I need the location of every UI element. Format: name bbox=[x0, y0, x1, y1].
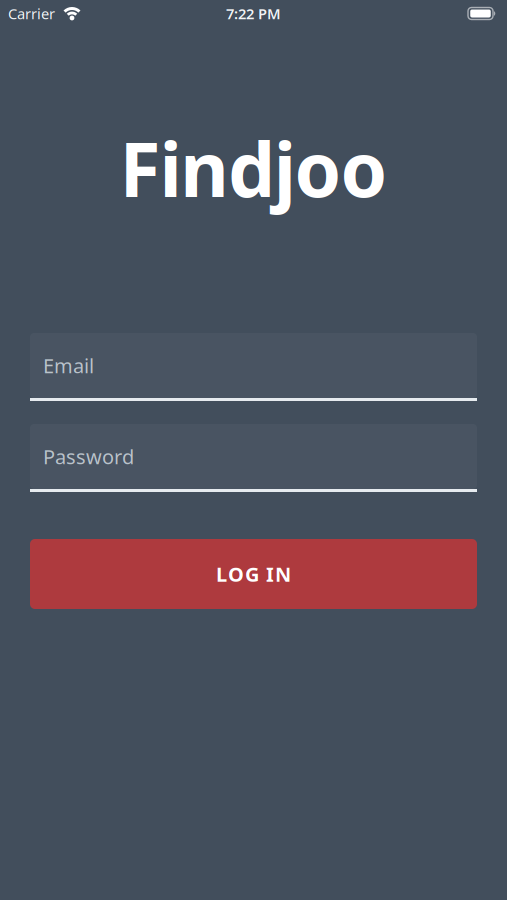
button[interactable]: Password bbox=[30, 424, 477, 492]
staticText: 7:22 PM bbox=[226, 4, 281, 23]
staticText: Carrier bbox=[8, 4, 55, 23]
button[interactable]: LOG IN bbox=[30, 539, 477, 609]
button[interactable]: Email bbox=[30, 333, 477, 401]
staticText: Password bbox=[43, 443, 134, 470]
staticText: Findjoo bbox=[120, 118, 387, 218]
staticText: LOG IN bbox=[216, 561, 291, 587]
staticText: Email bbox=[43, 352, 94, 379]
